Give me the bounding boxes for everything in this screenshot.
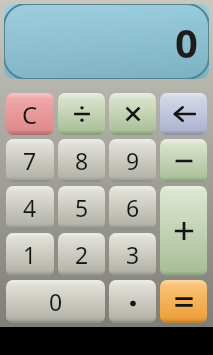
button[interactable]: 1	[6, 233, 54, 276]
button[interactable]: C	[6, 93, 54, 135]
button[interactable]: 5	[58, 186, 105, 229]
staticText: 4	[23, 192, 37, 223]
button[interactable]: 2	[58, 233, 105, 276]
staticText: 0	[49, 286, 63, 317]
button[interactable]: Subtract	[160, 139, 207, 182]
staticText: C	[22, 98, 38, 131]
staticText: 2	[75, 239, 89, 270]
button[interactable]: 7	[6, 139, 54, 182]
button[interactable]: 4	[6, 186, 54, 229]
button[interactable]: 0	[6, 280, 105, 323]
button[interactable]: Divide	[58, 93, 105, 135]
staticText: 0	[175, 15, 198, 69]
button[interactable]: 3	[109, 233, 156, 276]
staticText: 9	[126, 145, 140, 176]
staticText: 6	[126, 192, 140, 223]
staticText: 7	[23, 145, 37, 176]
button[interactable]: Equals	[160, 280, 207, 323]
button[interactable]: Decimal point	[109, 280, 156, 323]
button[interactable]: 9	[109, 139, 156, 182]
button[interactable]: Backspace	[160, 93, 207, 135]
staticText: 3	[126, 239, 140, 270]
button[interactable]: Multiply	[109, 93, 156, 135]
button[interactable]: 6	[109, 186, 156, 229]
button[interactable]: Add	[160, 186, 207, 276]
staticText: 1	[23, 239, 37, 270]
button[interactable]: 8	[58, 139, 105, 182]
staticText: 8	[75, 145, 89, 176]
staticText: 5	[75, 192, 89, 223]
